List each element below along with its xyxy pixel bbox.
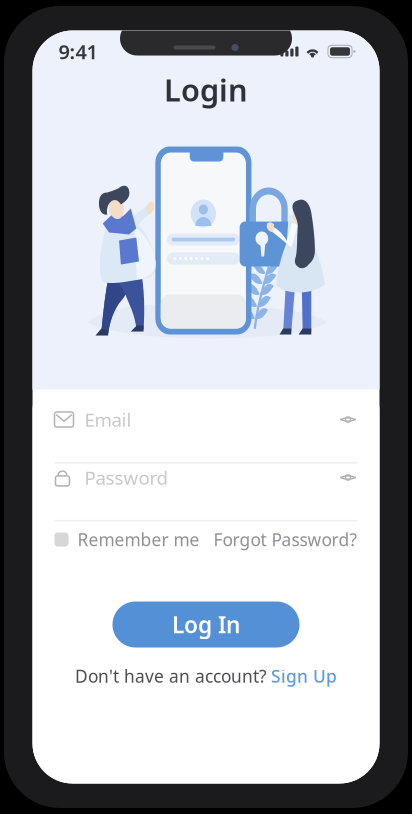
staticText: Email [84, 407, 131, 432]
button[interactable]: Forgot Password? [213, 528, 357, 551]
staticText: Log In [172, 609, 240, 639]
staticText: Password [84, 465, 167, 490]
button[interactable]: Sign Up [271, 664, 337, 687]
button[interactable]: Show password [338, 412, 357, 426]
staticText: Forgot Password? [213, 528, 357, 551]
button[interactable]: Log In [112, 601, 299, 647]
staticText: Don't have an account? [75, 664, 267, 687]
button[interactable]: Show password [338, 470, 357, 484]
button[interactable]: Remember me [54, 528, 199, 551]
staticText: 9:41 [58, 38, 97, 65]
staticText: Remember me [77, 528, 199, 551]
staticText: Sign Up [271, 664, 337, 687]
staticText: Login [164, 69, 248, 110]
